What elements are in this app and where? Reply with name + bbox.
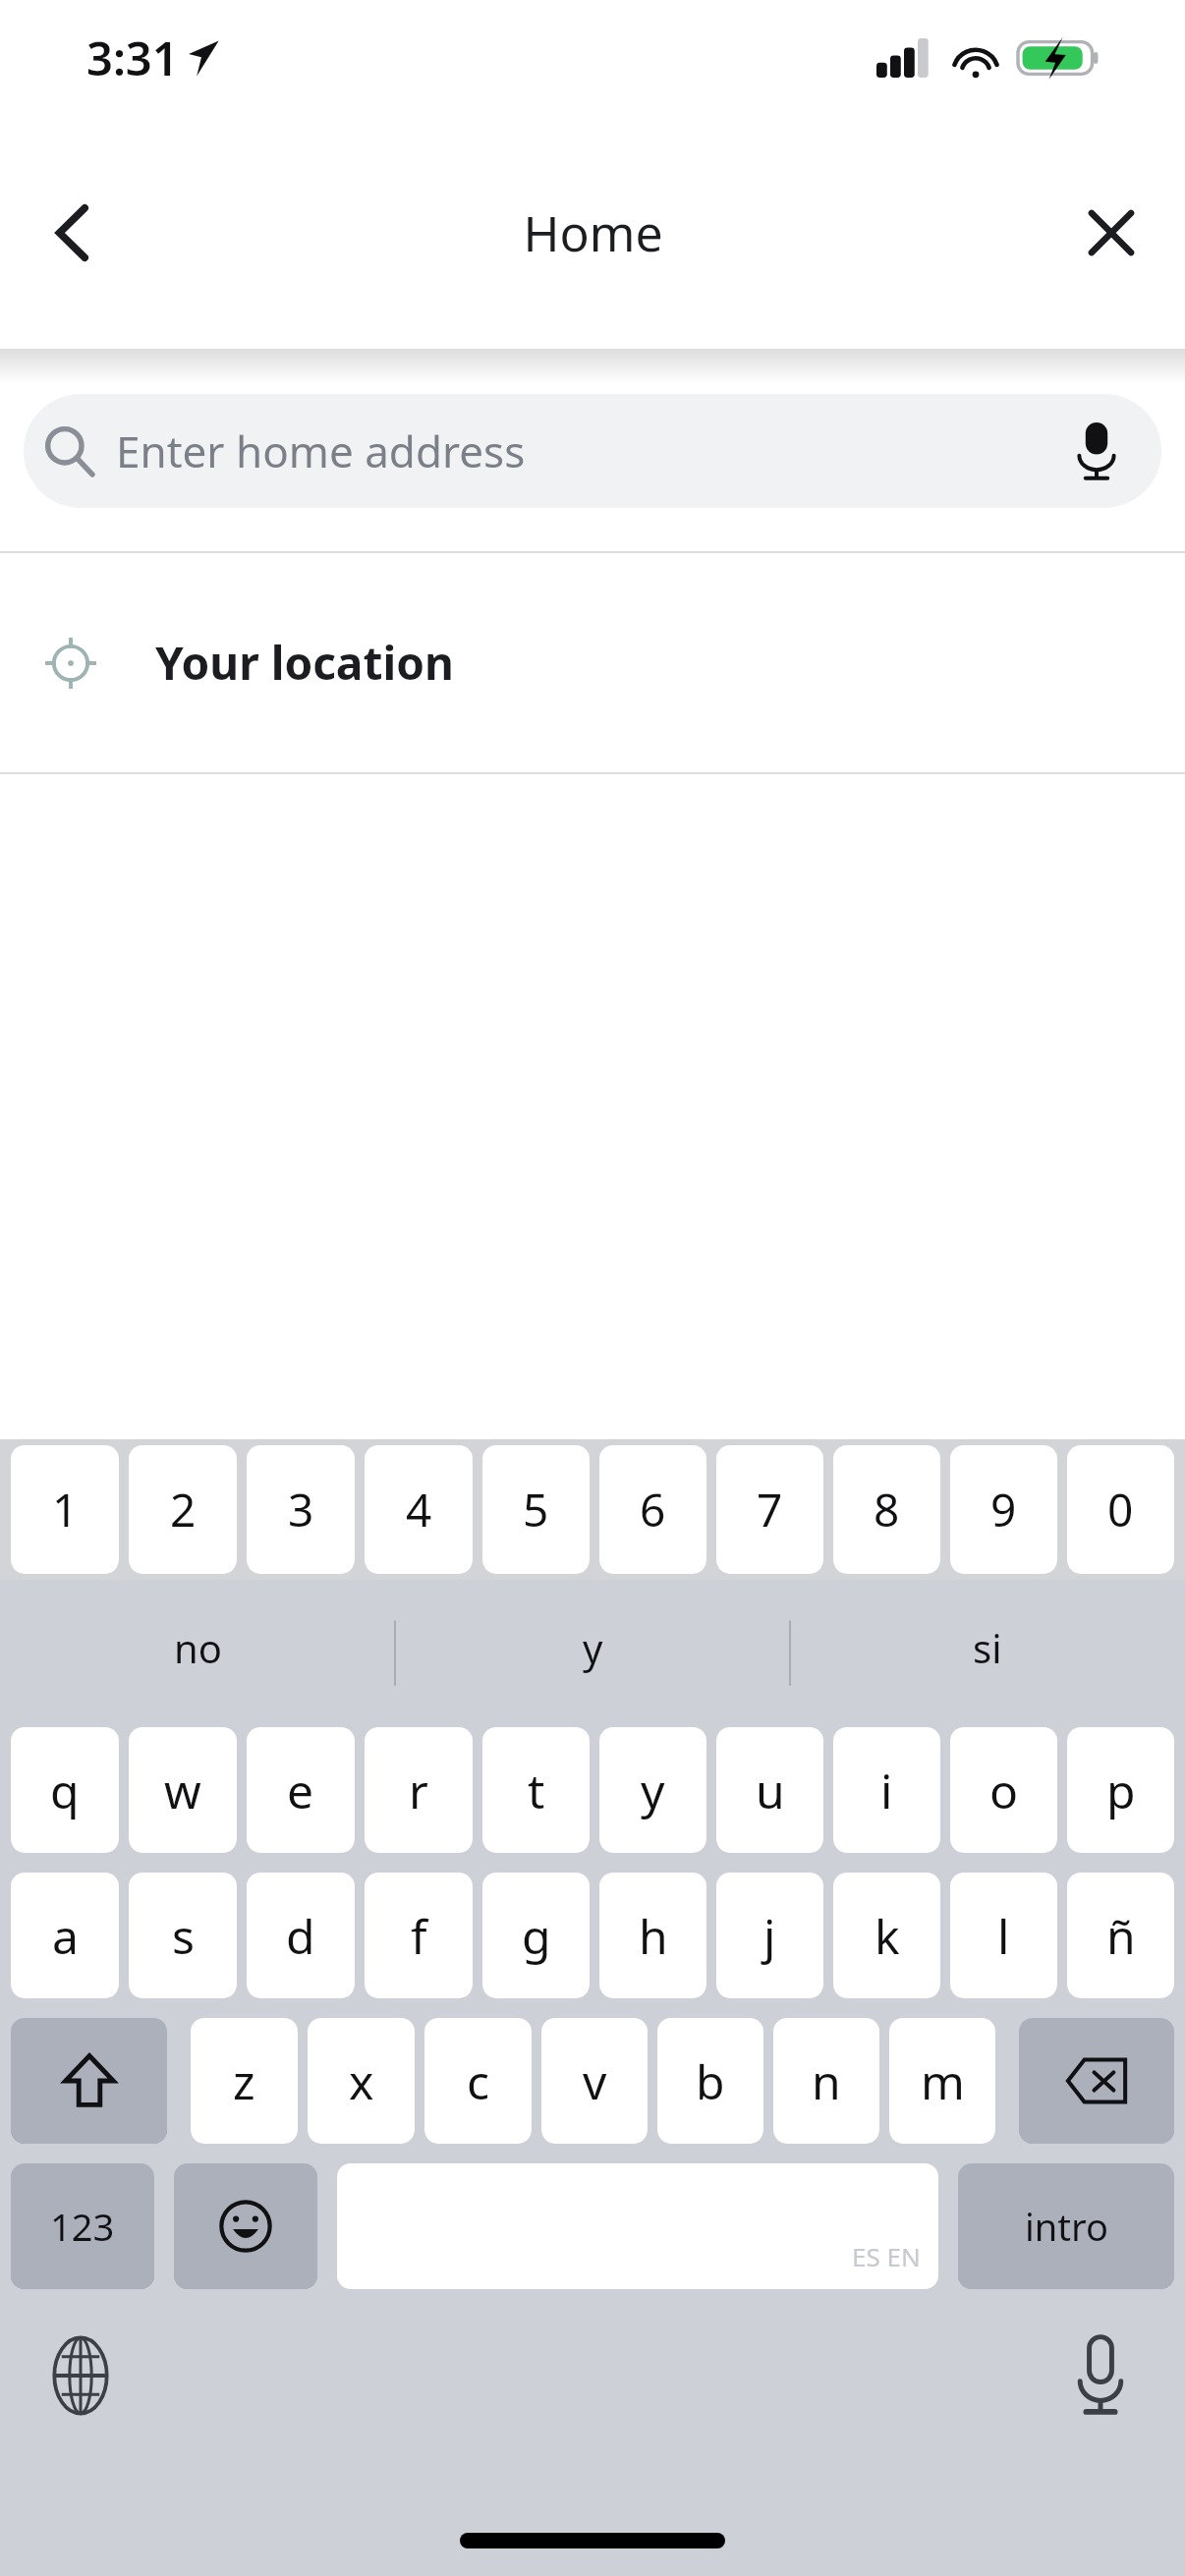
button[interactable]: x — [308, 2018, 415, 2144]
staticText: 5 — [523, 1479, 549, 1540]
button[interactable]: b — [657, 2018, 763, 2144]
staticText: x — [349, 2049, 374, 2113]
button[interactable]: u — [716, 1727, 823, 1853]
button[interactable]: g — [482, 1873, 590, 1998]
staticText: Home — [523, 199, 663, 266]
staticText: e — [287, 1759, 314, 1822]
button[interactable]: 6 — [599, 1445, 706, 1574]
button[interactable]: j — [716, 1873, 823, 1998]
staticText: 9 — [990, 1479, 1017, 1540]
button[interactable]: w — [129, 1727, 237, 1853]
staticText: t — [528, 1759, 545, 1822]
button[interactable]: d — [247, 1873, 355, 1998]
staticText: r — [409, 1759, 428, 1822]
button[interactable]: p — [1067, 1727, 1174, 1853]
staticText: p — [1106, 1759, 1136, 1822]
staticText: 7 — [757, 1479, 783, 1540]
button[interactable]: h — [599, 1873, 706, 1998]
button[interactable]: e — [247, 1727, 355, 1853]
button[interactable]: 0 — [1067, 1445, 1174, 1574]
staticText: q — [50, 1759, 80, 1822]
button[interactable]: y — [395, 1580, 790, 1715]
button[interactable]: q — [11, 1727, 119, 1853]
staticText: 3 — [288, 1479, 314, 1540]
button[interactable]: z — [191, 2018, 298, 2144]
staticText: s — [172, 1904, 195, 1968]
staticText: u — [756, 1759, 785, 1822]
staticText: n — [812, 2049, 841, 2113]
button[interactable]: v — [541, 2018, 648, 2144]
button[interactable]: Dictation — [1055, 2330, 1146, 2421]
staticText: 2 — [170, 1479, 197, 1540]
staticText: m — [921, 2049, 965, 2113]
button[interactable]: 9 — [950, 1445, 1057, 1574]
staticText: d — [286, 1904, 315, 1968]
button[interactable]: 1 — [11, 1445, 119, 1574]
staticText: a — [52, 1904, 79, 1968]
button[interactable]: Back — [18, 179, 126, 287]
button[interactable]: 3 — [247, 1445, 355, 1574]
button[interactable]: 123 — [11, 2163, 154, 2289]
button[interactable]: 5 — [482, 1445, 590, 1574]
staticText: no — [174, 1621, 222, 1674]
button[interactable]: 7 — [716, 1445, 823, 1574]
staticText: k — [875, 1904, 900, 1968]
staticText: f — [411, 1904, 427, 1968]
button[interactable]: Space — [337, 2163, 938, 2289]
staticText: c — [467, 2049, 490, 2113]
button[interactable]: i — [833, 1727, 940, 1853]
button[interactable]: c — [424, 2018, 532, 2144]
staticText: b — [696, 2049, 725, 2113]
button[interactable]: 4 — [365, 1445, 473, 1574]
staticText: y — [583, 1621, 603, 1674]
button[interactable]: Close — [1057, 179, 1165, 287]
staticText: j — [763, 1904, 776, 1968]
button[interactable]: ñ — [1067, 1873, 1174, 1998]
button[interactable]: Enter home address — [24, 394, 1161, 508]
button[interactable]: Voice search — [1049, 404, 1144, 498]
button[interactable]: a — [11, 1873, 119, 1998]
staticText: 1 — [52, 1479, 79, 1540]
staticText: o — [989, 1759, 1019, 1822]
staticText: 123 — [50, 2201, 115, 2252]
button[interactable]: 2 — [129, 1445, 237, 1574]
staticText: Enter home address — [116, 421, 526, 480]
staticText: Your location — [155, 632, 454, 694]
button[interactable]: Backspace — [1019, 2018, 1174, 2144]
staticText: 6 — [640, 1479, 666, 1540]
button[interactable]: Your location — [0, 553, 1185, 772]
staticText: 3:31 — [86, 27, 179, 89]
button[interactable]: no — [0, 1580, 395, 1715]
button[interactable]: intro — [958, 2163, 1174, 2289]
button[interactable]: Shift — [11, 2018, 167, 2144]
button[interactable]: n — [773, 2018, 879, 2144]
button[interactable]: l — [950, 1873, 1057, 1998]
staticText: i — [880, 1759, 893, 1822]
staticText: si — [973, 1621, 1002, 1674]
staticText: v — [583, 2049, 607, 2113]
staticText: h — [639, 1904, 668, 1968]
staticText: w — [164, 1759, 201, 1822]
staticText: z — [233, 2049, 255, 2113]
staticText: ñ — [1106, 1904, 1136, 1968]
staticText: g — [522, 1904, 551, 1968]
button[interactable]: k — [833, 1873, 940, 1998]
button[interactable]: Emoji — [174, 2163, 317, 2289]
staticText: 0 — [1107, 1479, 1134, 1540]
button[interactable]: t — [482, 1727, 590, 1853]
staticText: 8 — [874, 1479, 900, 1540]
button[interactable]: Change keyboard — [35, 2330, 126, 2421]
button[interactable]: o — [950, 1727, 1057, 1853]
staticText: l — [997, 1904, 1010, 1968]
button[interactable]: 8 — [833, 1445, 940, 1574]
button[interactable]: s — [129, 1873, 237, 1998]
staticText: ES EN — [852, 2239, 921, 2273]
staticText: intro — [1025, 2201, 1108, 2252]
button[interactable]: y — [599, 1727, 706, 1853]
button[interactable]: f — [365, 1873, 473, 1998]
staticText: 4 — [406, 1479, 432, 1540]
button[interactable]: si — [790, 1580, 1185, 1715]
button[interactable]: m — [889, 2018, 995, 2144]
staticText: y — [641, 1759, 665, 1822]
button[interactable]: r — [365, 1727, 473, 1853]
